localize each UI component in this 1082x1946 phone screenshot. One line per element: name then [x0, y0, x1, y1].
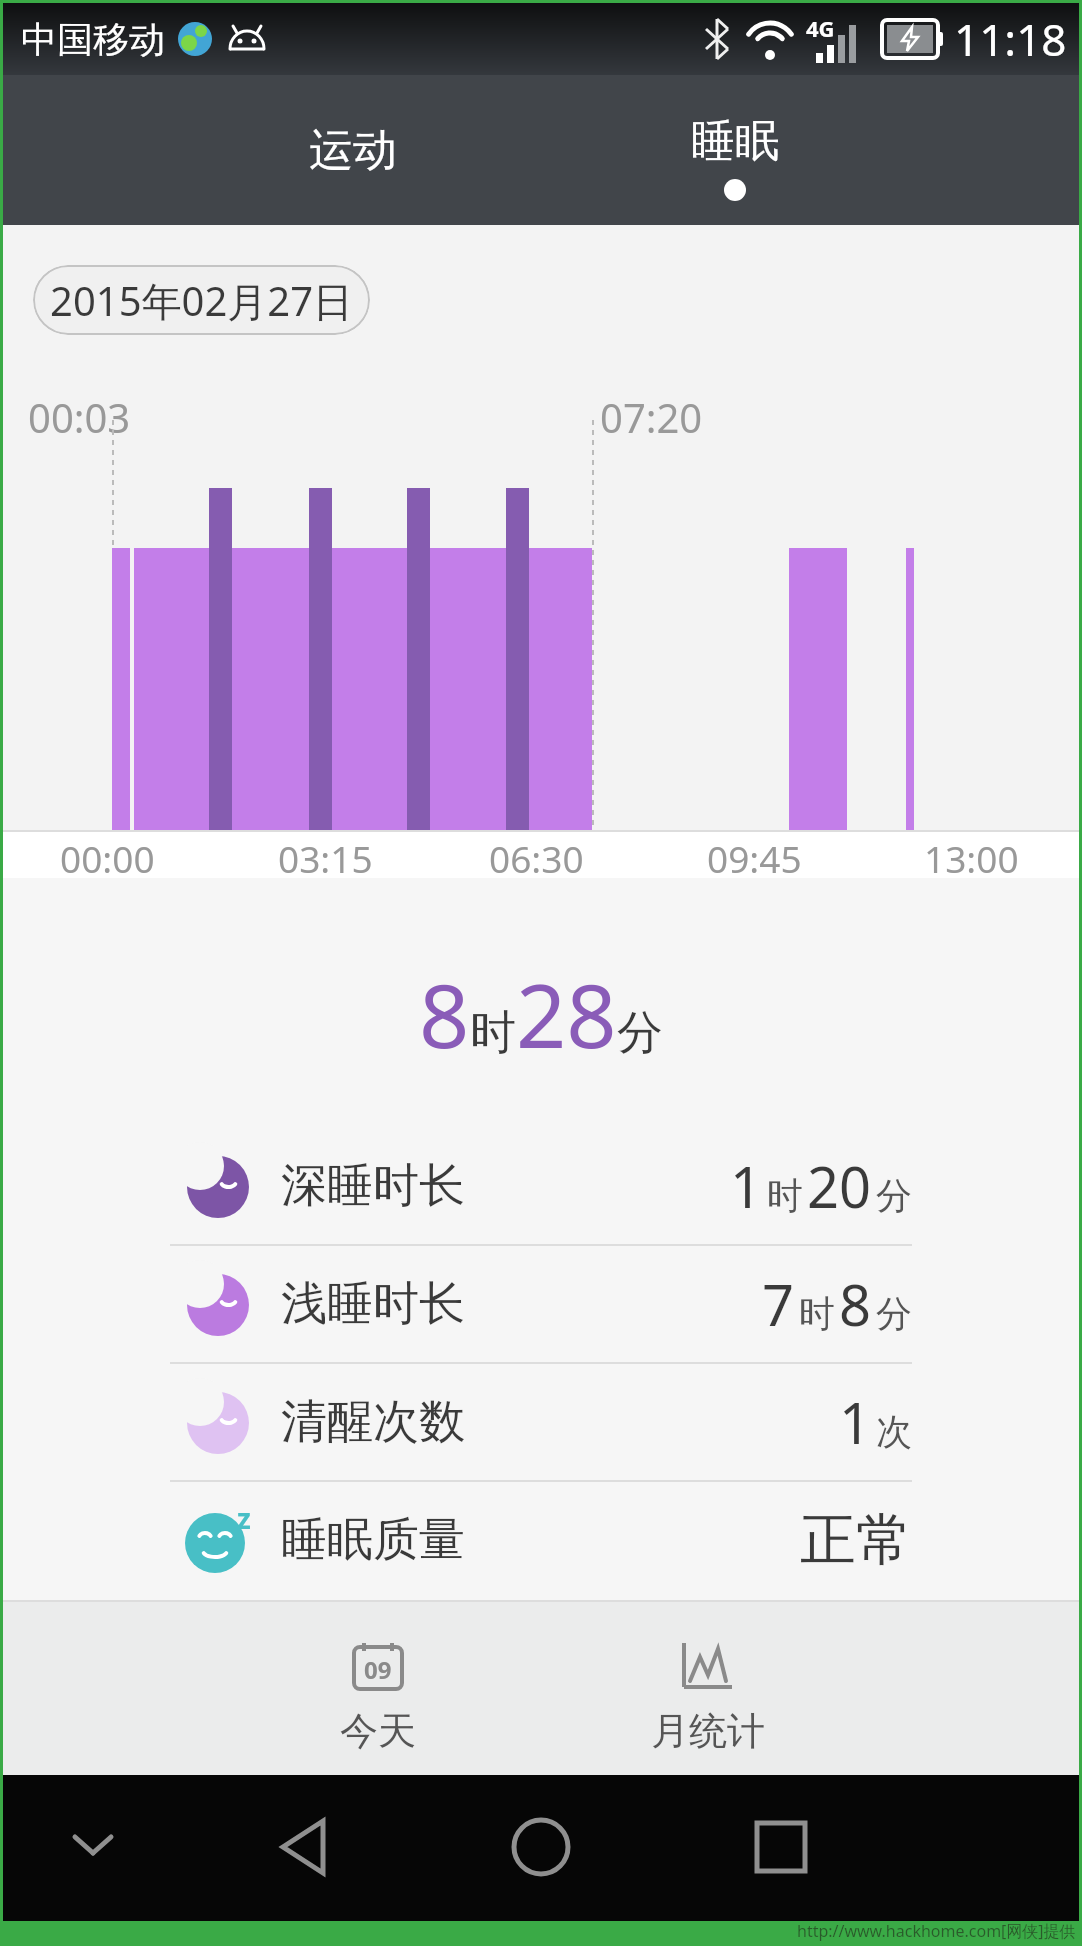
staticText: http://www.hackhome.com[网侠]提供	[797, 1920, 1076, 1942]
staticText: 次	[876, 1409, 912, 1454]
button[interactable]: 运动	[243, 75, 463, 225]
staticText: 睡眠质量	[281, 1511, 465, 1569]
staticText: 13:00	[924, 833, 1019, 881]
staticText: 00:03	[28, 390, 131, 444]
button[interactable]	[753, 1819, 809, 1875]
staticText: 2015年02月27日	[50, 273, 354, 328]
staticText: 分	[617, 1004, 663, 1062]
staticText: 今天	[340, 1707, 416, 1755]
staticText: 睡眠	[691, 114, 779, 169]
staticText: 分	[876, 1291, 912, 1336]
staticText: 运动	[309, 123, 397, 178]
staticText: 时	[470, 1004, 516, 1062]
staticText: 09:45	[707, 833, 802, 881]
staticText: 7	[762, 1266, 795, 1342]
staticText: 分	[876, 1173, 912, 1218]
staticText: 8	[839, 1266, 872, 1342]
staticText: 1	[730, 1148, 763, 1224]
staticText: 正常	[800, 1505, 912, 1576]
staticText: 中国移动	[21, 17, 165, 62]
button[interactable]: z	[3, 1482, 1079, 1598]
staticText: 11:18	[954, 9, 1067, 69]
button[interactable]	[71, 1833, 115, 1859]
button[interactable]: 清醒次数	[3, 1364, 1079, 1480]
staticText: 浅睡时长	[281, 1275, 465, 1333]
button[interactable]: 09	[253, 1600, 503, 1775]
staticText: 4G	[806, 13, 835, 43]
staticText: 07:20	[600, 390, 703, 444]
staticText: 06:30	[489, 833, 584, 881]
staticText: 时	[799, 1291, 835, 1336]
button[interactable]: 2015年02月27日	[33, 265, 370, 335]
button[interactable]: 月统计	[583, 1600, 833, 1775]
staticText: 1	[839, 1384, 872, 1460]
staticText: z	[237, 1499, 251, 1537]
button[interactable]	[275, 1817, 331, 1877]
staticText: 03:15	[278, 833, 373, 881]
staticText: 20	[807, 1148, 872, 1224]
button[interactable]: 浅睡时长	[3, 1246, 1079, 1362]
staticText: 28	[516, 954, 617, 1074]
staticText: 09	[364, 1653, 392, 1686]
button[interactable]: 睡眠	[625, 75, 845, 225]
staticText: 00:00	[60, 833, 155, 881]
staticText: 月统计	[651, 1707, 765, 1755]
staticText: 深睡时长	[281, 1157, 465, 1215]
button[interactable]: 深睡时长	[3, 1128, 1079, 1244]
button[interactable]	[511, 1817, 571, 1877]
staticText: 清醒次数	[281, 1393, 465, 1451]
staticText: 8	[419, 954, 470, 1074]
staticText: 时	[767, 1173, 803, 1218]
